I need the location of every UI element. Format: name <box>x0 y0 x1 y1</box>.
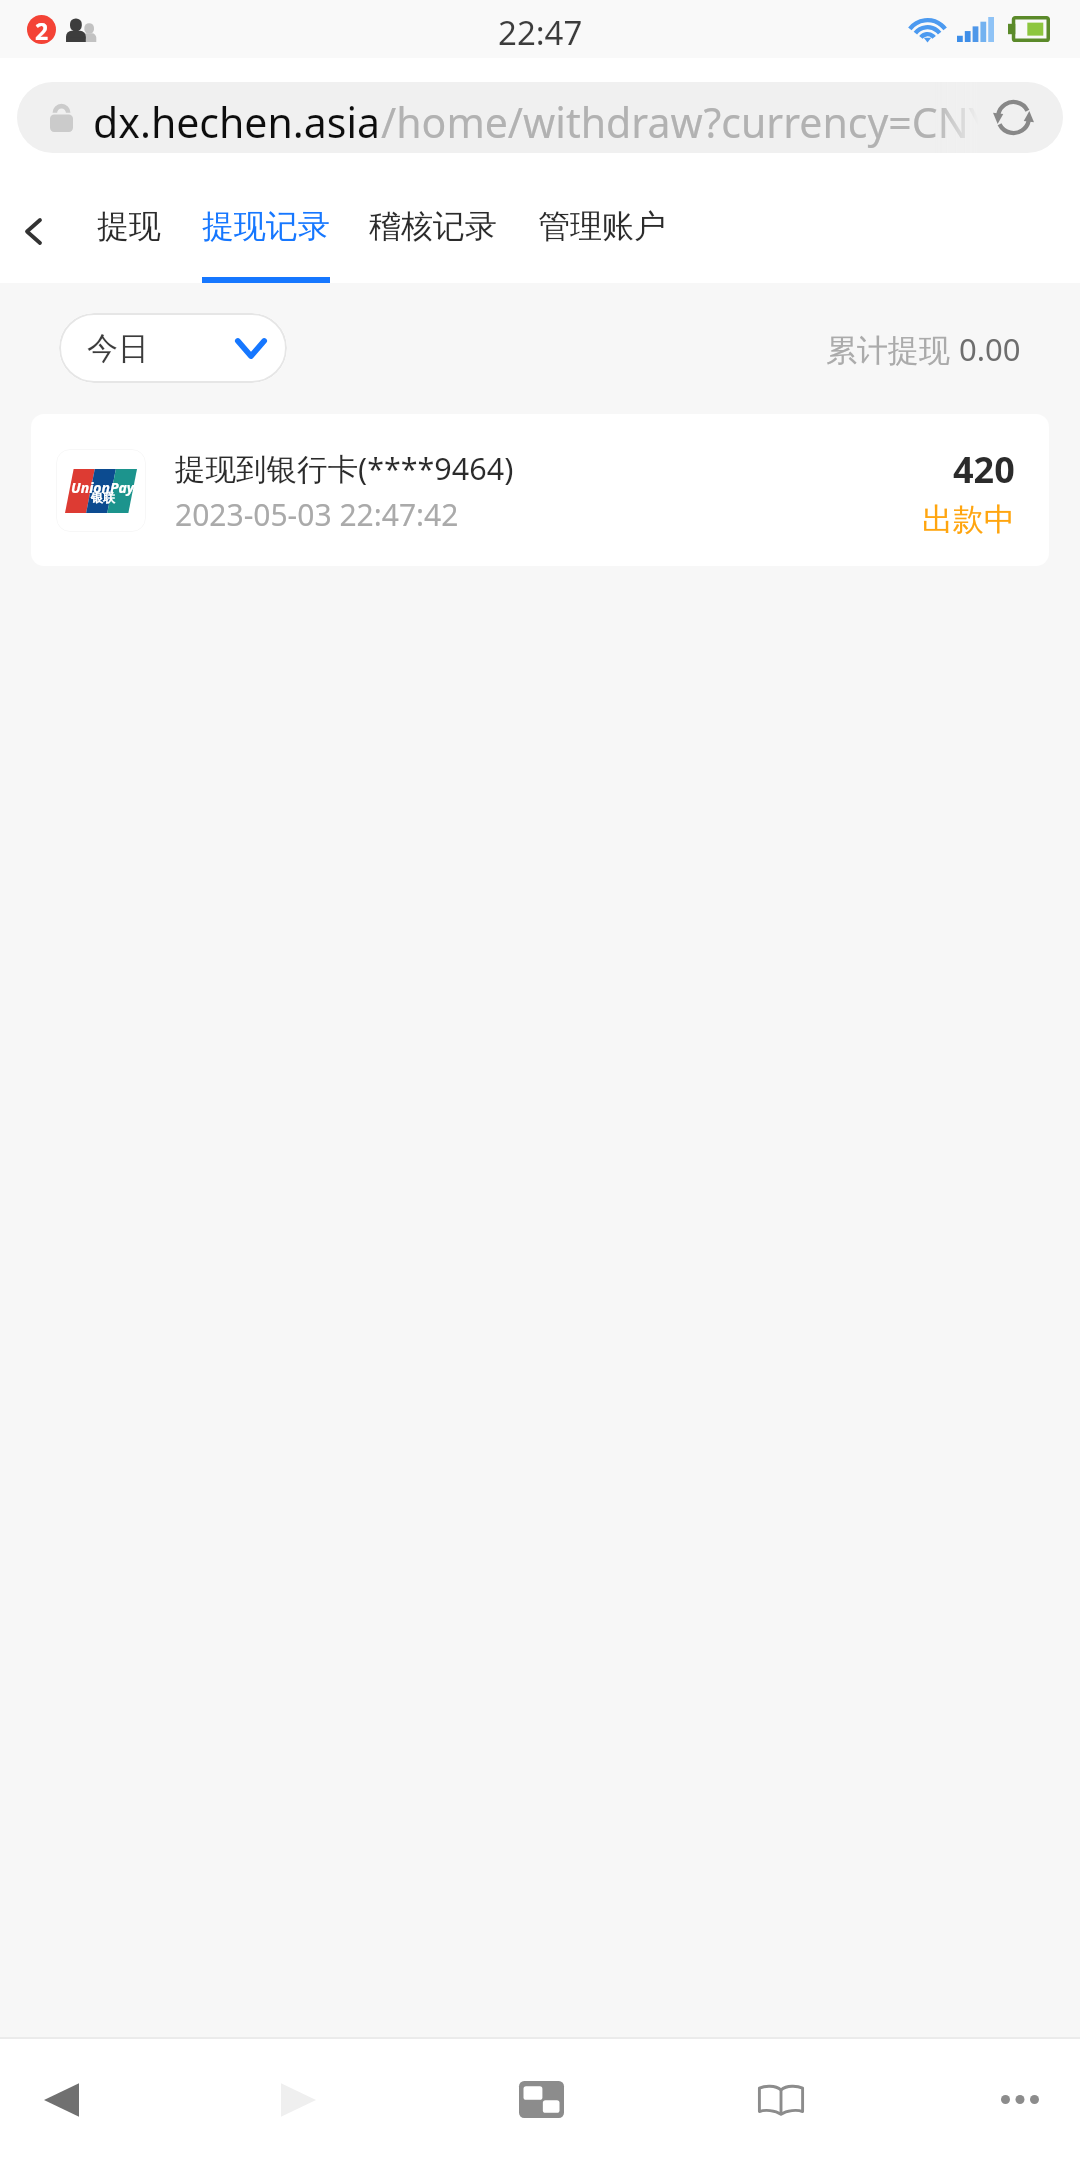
button[interactable]: UnionPay <box>31 414 1049 566</box>
staticText: dx.hechen.asia <box>93 94 381 150</box>
button[interactable]: Back <box>0 2039 170 2160</box>
staticText: 提现 <box>97 206 161 246</box>
button[interactable]: 管理账户 <box>538 177 666 283</box>
button[interactable]: Back <box>0 177 97 283</box>
button[interactable]: Bookmarks <box>660 2039 890 2160</box>
staticText: 2 <box>35 15 49 44</box>
staticText: 0.00 <box>959 328 1021 370</box>
staticText: 提现到银行卡(****9464) <box>175 447 514 489</box>
staticText: /home/withdraw?currency=CNY <box>381 94 979 150</box>
button[interactable]: Address bar <box>17 82 1063 153</box>
button[interactable]: 稽核记录 <box>369 177 497 283</box>
staticText: 22:47 <box>498 10 583 55</box>
staticText: 2023-05-03 22:47:42 <box>175 494 459 535</box>
button[interactable]: 今日 <box>59 313 287 383</box>
button[interactable]: Tabs <box>400 2039 640 2160</box>
staticText: 提现记录 <box>202 206 330 246</box>
staticText: 出款中 <box>922 500 1015 539</box>
button[interactable]: 提现记录 <box>202 177 330 283</box>
button[interactable]: 提现 <box>97 177 161 283</box>
button[interactable]: Refresh <box>991 95 1036 140</box>
staticText: 管理账户 <box>538 206 666 246</box>
staticText: 今日 <box>87 329 149 368</box>
staticText: 累计提现 <box>826 328 959 370</box>
staticText: UnionPay <box>71 478 135 497</box>
button[interactable]: Menu <box>900 2039 1080 2160</box>
staticText: 银联 <box>91 490 115 505</box>
staticText: 420 <box>953 445 1015 494</box>
staticText: 稽核记录 <box>369 206 497 246</box>
